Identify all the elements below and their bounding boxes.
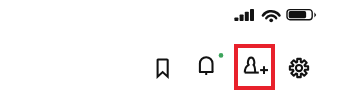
button[interactable]: Settings — [282, 51, 316, 85]
button[interactable]: Add person — [234, 44, 275, 90]
button[interactable]: Notifications — [190, 50, 226, 82]
button[interactable]: Bookmark — [147, 52, 179, 84]
